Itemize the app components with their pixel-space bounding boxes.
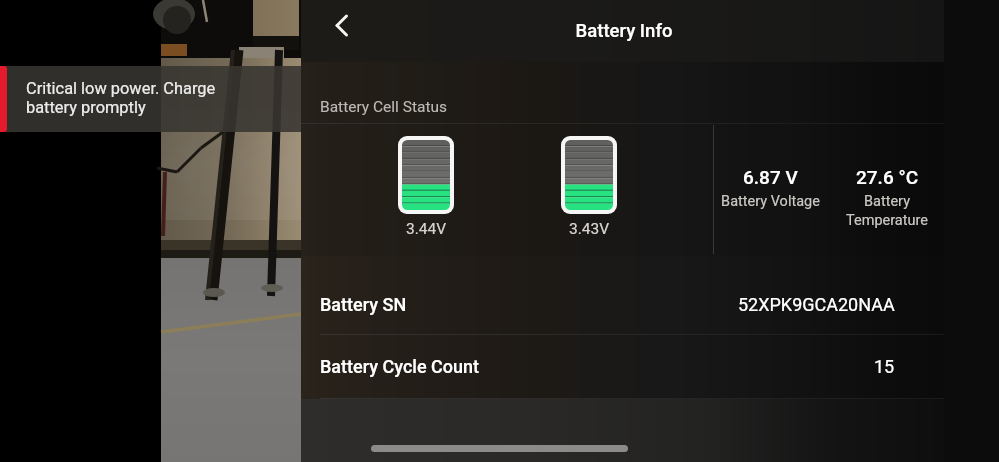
staticText: Battery Info <box>524 20 724 42</box>
button[interactable]: Battery SN <box>301 275 944 334</box>
staticText: Battery Cycle Count <box>320 356 480 377</box>
button[interactable]: Home <box>371 445 628 452</box>
button[interactable]: Critical low power. Charge battery promp… <box>0 66 301 132</box>
staticText: 52XPK9GCA20NAA <box>738 294 895 315</box>
staticText: Battery SN <box>320 294 407 315</box>
staticText: Battery Cell Status <box>320 98 448 116</box>
staticText: 6.87 V <box>743 166 798 188</box>
staticText: 3.43V <box>569 220 610 238</box>
button[interactable]: Back <box>314 3 370 59</box>
staticText: 3.44V <box>406 220 447 238</box>
staticText: 27.6 °C <box>856 166 919 188</box>
staticText: Battery Voltage <box>721 193 820 210</box>
button[interactable]: Battery Cycle Count <box>301 335 944 398</box>
staticText: Battery Temperature <box>846 193 928 229</box>
staticText: 15 <box>874 356 895 377</box>
staticText: Critical low power. Charge battery promp… <box>26 79 216 117</box>
